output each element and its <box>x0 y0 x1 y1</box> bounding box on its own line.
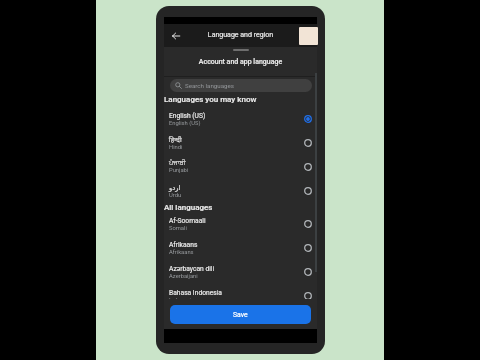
button[interactable]: English (US) <box>164 107 317 131</box>
staticText: Hindi <box>169 144 183 151</box>
button[interactable]: اردو <box>164 179 317 203</box>
button[interactable]: Back <box>164 24 188 47</box>
button[interactable]: Save <box>170 305 311 324</box>
staticText: اردو <box>169 184 181 192</box>
button[interactable]: Afrikaans <box>164 236 317 260</box>
button[interactable]: Search languages <box>170 79 312 92</box>
staticText: Urdu <box>169 192 182 199</box>
staticText: Azerbaijani <box>169 273 198 280</box>
staticText: All languages <box>164 203 317 212</box>
button[interactable]: Azərbaycan dili <box>164 260 317 284</box>
staticText: Indonesian <box>169 297 198 299</box>
staticText: Afrikaans <box>169 249 194 256</box>
staticText: Somali <box>169 225 187 232</box>
button[interactable]: हिन्दी <box>164 131 317 155</box>
staticText: English (US) <box>169 120 201 127</box>
staticText: ਪੰਜਾਬੀ <box>169 160 186 167</box>
staticText: Punjabi <box>169 167 189 174</box>
button[interactable]: ਪੰਜਾਬੀ <box>164 155 317 179</box>
staticText: Af-Soomaali <box>169 217 206 225</box>
staticText: Account and app language <box>164 58 317 66</box>
staticText: English (US) <box>169 112 206 120</box>
button[interactable]: Bahasa Indonesia <box>164 284 317 299</box>
staticText: Languages you may know <box>164 95 317 104</box>
staticText: Save <box>233 311 248 319</box>
staticText: Search languages <box>185 82 235 89</box>
staticText: Language and region <box>164 31 317 39</box>
button[interactable]: Af-Soomaali <box>164 212 317 236</box>
staticText: Afrikaans <box>169 241 198 249</box>
staticText: Bahasa Indonesia <box>169 289 222 297</box>
staticText: Azərbaycan dili <box>169 265 215 273</box>
staticText: हिन्दी <box>169 135 182 144</box>
